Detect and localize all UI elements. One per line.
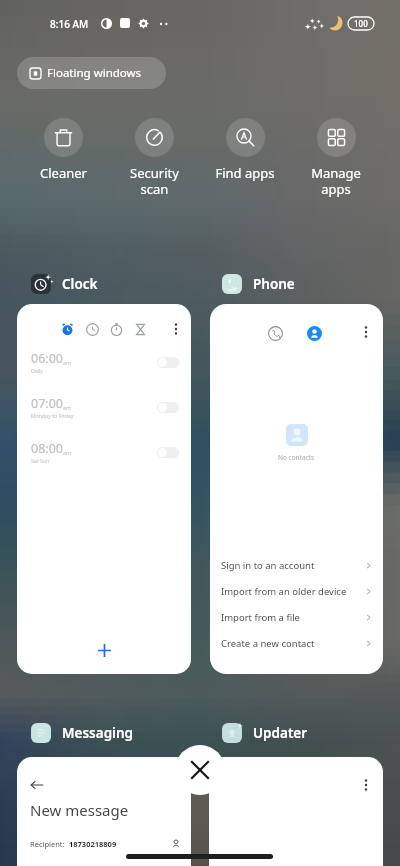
staticText: 07:00 xyxy=(31,395,63,412)
staticText: Monday to Friday xyxy=(31,412,74,419)
button[interactable]: More options xyxy=(359,325,373,339)
staticText: Manage apps xyxy=(311,164,361,197)
staticText: 8:16 AM xyxy=(50,17,89,31)
staticText: Floating windows xyxy=(47,65,142,81)
button[interactable]: Floating windows xyxy=(17,57,166,89)
staticText: am xyxy=(63,359,72,366)
button[interactable]: Updater xyxy=(222,723,308,743)
button[interactable]: Create a new contact xyxy=(210,630,383,656)
staticText: 08:00 xyxy=(31,440,63,457)
staticText: Security scan xyxy=(130,164,179,197)
button[interactable]: Security scan xyxy=(109,118,199,197)
staticText: Sat Sun xyxy=(31,457,50,464)
button[interactable]: Find apps xyxy=(200,118,290,182)
staticText: am xyxy=(63,404,72,411)
button[interactable]: Import from an older device xyxy=(210,578,383,604)
staticText: 100 xyxy=(354,18,368,29)
button[interactable]: Import from a file xyxy=(210,604,383,630)
staticText: Updater xyxy=(253,724,308,742)
staticText: Sign in to an account xyxy=(221,559,315,572)
button[interactable]: Toggle alarm xyxy=(157,447,179,458)
staticText: Find apps xyxy=(215,164,275,182)
button[interactable]: Stopwatch xyxy=(110,323,123,336)
button[interactable]: More options xyxy=(209,757,383,866)
staticText: Messaging xyxy=(62,724,133,742)
button[interactable]: New message xyxy=(17,757,191,866)
button[interactable]: Toggle alarm xyxy=(157,357,179,368)
staticText: Cleaner xyxy=(40,164,87,182)
staticText: am xyxy=(63,449,72,456)
button[interactable]: Phone xyxy=(222,274,295,294)
button[interactable]: Alarm xyxy=(17,304,191,674)
staticText: Import from an older device xyxy=(221,585,347,598)
button[interactable]: 08:00 xyxy=(17,435,191,469)
button[interactable]: Alarm xyxy=(61,323,74,336)
staticText: 06:00 xyxy=(31,350,63,367)
staticText: No contacts xyxy=(278,453,315,462)
staticText: New message xyxy=(30,800,129,820)
staticText: Recipient: xyxy=(30,839,65,849)
button[interactable]: Clock xyxy=(31,274,98,294)
staticText: 18730218809 xyxy=(69,839,117,849)
button[interactable]: Sign in to an account xyxy=(210,552,383,578)
button[interactable]: Recents xyxy=(268,326,283,341)
button[interactable]: Cleaner xyxy=(18,118,108,182)
staticText: Import from a file xyxy=(221,611,300,624)
button[interactable]: More options xyxy=(359,778,373,792)
button[interactable]: Clock xyxy=(86,323,99,336)
staticText: Clock xyxy=(62,275,98,293)
staticText: Daily xyxy=(31,367,44,374)
button[interactable]: Manage apps xyxy=(291,118,381,197)
button[interactable]: Toggle alarm xyxy=(157,402,179,413)
button[interactable]: Recents xyxy=(210,304,383,674)
button[interactable]: 06:00 xyxy=(17,345,191,379)
button[interactable]: Messaging xyxy=(31,723,133,743)
button[interactable]: Timer xyxy=(134,323,147,336)
button[interactable]: Add alarm xyxy=(89,635,119,665)
staticText: Create a new contact xyxy=(221,637,315,650)
button[interactable]: More options xyxy=(169,322,183,336)
button[interactable]: 07:00 xyxy=(17,390,191,424)
staticText: Phone xyxy=(253,275,295,293)
button[interactable]: Close all xyxy=(175,745,225,795)
button[interactable]: Contacts xyxy=(307,326,322,341)
